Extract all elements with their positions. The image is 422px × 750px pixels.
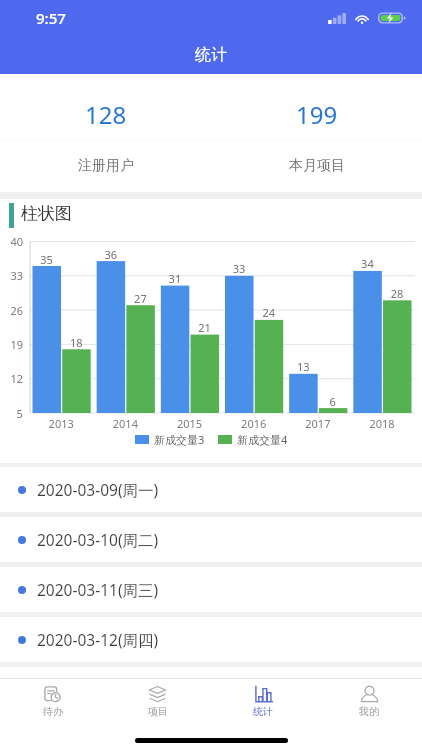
staticText: 注册用户: [78, 157, 134, 175]
staticText: 新成交量4: [237, 432, 288, 447]
staticText: 2020-03-10(周二): [37, 529, 159, 550]
staticText: 新成交量3: [154, 432, 205, 447]
other: 统计: [254, 685, 273, 704]
button[interactable]: 2020-03-10(周二): [0, 517, 422, 562]
button[interactable]: 128: [0, 74, 211, 192]
button[interactable]: 199: [211, 74, 422, 192]
staticText: 本月项目: [289, 157, 345, 175]
staticText: 199: [296, 98, 338, 131]
staticText: 统计: [195, 45, 227, 65]
staticText: 柱状图: [21, 203, 72, 224]
staticText: 2020-03-11(周三): [37, 579, 159, 600]
button[interactable]: 我的: [316, 679, 422, 722]
staticText: 128: [85, 98, 127, 131]
staticText: 2020-03-09(周一): [37, 479, 159, 500]
button[interactable]: 项目: [105, 679, 210, 722]
staticText: 待办: [43, 705, 63, 718]
button[interactable]: 2020-03-11(周三): [0, 567, 422, 612]
staticText: 统计: [253, 705, 273, 718]
staticText: 我的: [359, 705, 379, 718]
staticText: 项目: [148, 705, 168, 718]
button[interactable]: 统计: [210, 679, 316, 722]
button[interactable]: 待办: [0, 679, 105, 722]
button[interactable]: 2020-03-09(周一): [0, 467, 422, 512]
other: 项目: [148, 685, 167, 704]
other: 待办: [43, 685, 62, 704]
other: 我的: [360, 685, 379, 704]
staticText: 9:57: [36, 8, 66, 28]
staticText: 2020-03-12(周四): [37, 629, 159, 650]
button[interactable]: 2020-03-12(周四): [0, 617, 422, 662]
